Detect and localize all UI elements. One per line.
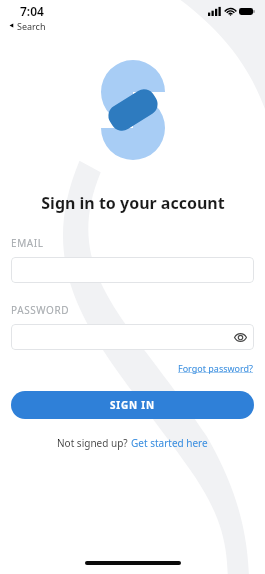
button[interactable]: SIGN IN <box>11 391 254 419</box>
staticText: SIGN IN <box>110 398 155 412</box>
button[interactable]: Get started here <box>131 436 208 450</box>
button[interactable]: Show password <box>231 328 249 346</box>
staticText: Search <box>17 20 46 30</box>
staticText: PASSWORD <box>11 303 70 317</box>
staticText: Not signed up? <box>57 436 131 450</box>
button[interactable]: Forgot password? <box>178 362 254 374</box>
staticText: Forgot password? <box>178 362 254 374</box>
staticText: Sign in to your account <box>41 192 225 214</box>
staticText: EMAIL <box>11 236 44 250</box>
staticText: Get started here <box>131 436 208 450</box>
staticText: 7:04 <box>20 3 44 19</box>
button[interactable]: Show password <box>11 324 254 350</box>
button[interactable] <box>11 257 254 283</box>
